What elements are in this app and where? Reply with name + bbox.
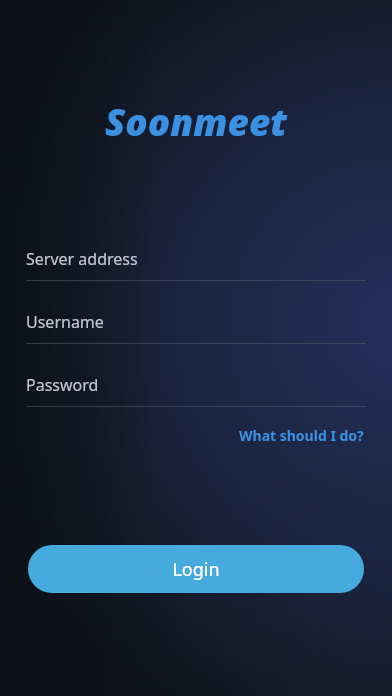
staticText: What should I do? — [239, 426, 364, 445]
button[interactable]: Server address — [26, 248, 366, 281]
button[interactable]: Username — [26, 311, 366, 344]
staticText: Username — [26, 311, 104, 333]
button[interactable]: Login — [28, 545, 364, 593]
staticText: Password — [26, 374, 99, 396]
staticText: Login — [172, 557, 220, 582]
button[interactable]: Password — [26, 374, 366, 407]
staticText: Soonmeet — [105, 96, 288, 146]
staticText: Server address — [26, 248, 138, 270]
button[interactable]: What should I do? — [237, 423, 366, 448]
